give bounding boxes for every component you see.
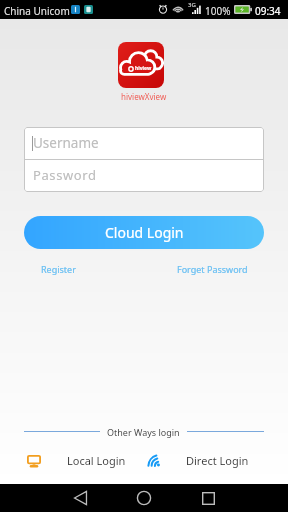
staticText: China Unicom — [4, 4, 70, 18]
button[interactable]: Password — [24, 160, 264, 190]
button[interactable]: Local Login — [0, 446, 144, 474]
button[interactable]: Home — [130, 484, 158, 512]
button[interactable]: Username — [24, 127, 264, 159]
button[interactable]: Recent apps — [194, 484, 222, 512]
button[interactable]: Forget Password — [163, 259, 264, 279]
staticText: Local Login — [67, 453, 126, 468]
staticText: Password — [33, 166, 97, 184]
button[interactable]: Register — [24, 259, 93, 279]
staticText: 3G — [188, 1, 196, 9]
staticText: Forget Password — [177, 263, 248, 275]
staticText: hiviewXview — [121, 91, 167, 102]
staticText: Other Ways login — [107, 426, 180, 438]
staticText: Register — [41, 263, 76, 275]
button[interactable]: Direct Login — [144, 446, 288, 474]
staticText: Username — [33, 134, 99, 152]
staticText: hiview — [135, 65, 152, 72]
button[interactable]: Back — [66, 484, 94, 512]
staticText: 09:34 — [255, 4, 281, 18]
button[interactable]: Cloud Login — [24, 216, 264, 249]
staticText: Cloud Login — [105, 223, 184, 242]
staticText: Direct Login — [186, 453, 249, 468]
staticText: 100% — [205, 4, 231, 18]
